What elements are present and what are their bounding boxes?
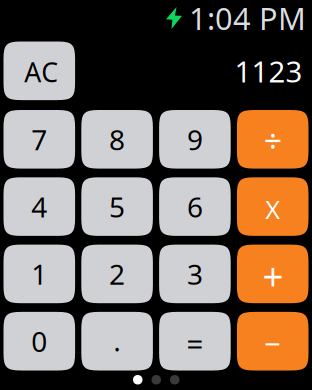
staticText: X	[265, 192, 280, 226]
staticText: 1	[31, 255, 47, 292]
staticText: .	[114, 323, 121, 359]
button[interactable]: X	[237, 177, 308, 236]
button[interactable]: 4	[3, 177, 75, 236]
staticText: 3	[187, 255, 203, 292]
button[interactable]: −	[237, 312, 308, 370]
button[interactable]: 0	[3, 312, 75, 370]
staticText: +	[262, 251, 283, 301]
button[interactable]: ÷	[237, 110, 308, 169]
staticText: 0	[31, 323, 47, 360]
button[interactable]: 3	[159, 245, 231, 303]
staticText: ÷	[264, 119, 282, 162]
staticText: AC	[24, 54, 58, 89]
staticText: −	[264, 324, 281, 363]
staticText: =	[186, 324, 203, 363]
staticText: 4	[31, 188, 47, 225]
staticText: 2	[109, 255, 125, 292]
button[interactable]: =	[159, 312, 231, 370]
button[interactable]: 9	[159, 110, 231, 169]
button[interactable]: +	[237, 245, 308, 303]
staticText: 7	[31, 121, 47, 158]
button[interactable]: 2	[81, 245, 153, 303]
staticText: 8	[109, 121, 125, 158]
staticText: 9	[187, 121, 203, 158]
staticText: 1123	[234, 51, 302, 90]
button[interactable]: 5	[81, 177, 153, 236]
button[interactable]: 7	[3, 110, 75, 169]
button[interactable]: 8	[81, 110, 153, 169]
staticText: 6	[187, 188, 203, 225]
button[interactable]: 1	[3, 245, 75, 303]
button[interactable]: 6	[159, 177, 231, 236]
staticText: 5	[109, 188, 125, 225]
button[interactable]: AC	[3, 41, 75, 100]
staticText: 1:04 PM	[189, 0, 306, 38]
button[interactable]: .	[81, 312, 153, 370]
